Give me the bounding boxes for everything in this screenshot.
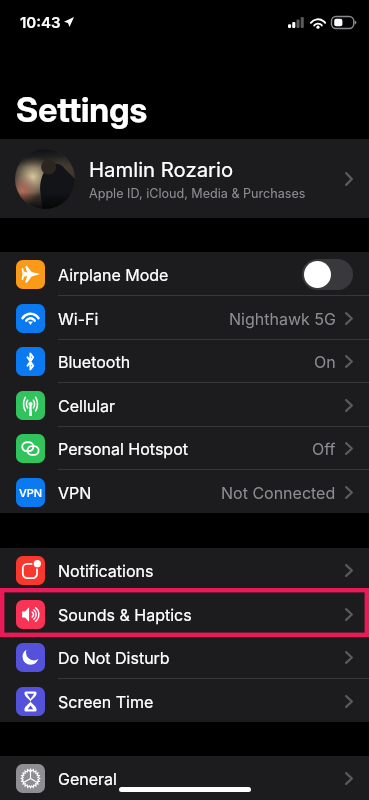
staticText: Not Connected: [221, 483, 336, 502]
staticText: General: [58, 769, 117, 788]
button[interactable]: Hamlin Rozario: [0, 139, 369, 218]
button[interactable]: Bluetooth: [0, 339, 369, 383]
staticText: Cellular: [58, 396, 116, 415]
staticText: Nighthawk 5G: [229, 309, 336, 328]
button[interactable]: Airplane Mode toggle, off: [302, 259, 353, 290]
staticText: Do Not Disturb: [58, 648, 170, 667]
button[interactable]: VPN: [0, 470, 369, 514]
button[interactable]: Wi-Fi: [0, 296, 369, 340]
staticText: Screen Time: [58, 692, 154, 711]
staticText: Settings: [16, 89, 148, 130]
button[interactable]: Cellular: [0, 383, 369, 427]
staticText: On: [314, 352, 336, 371]
staticText: 10:43: [20, 13, 61, 31]
staticText: Apple ID, iCloud, Media & Purchases: [89, 186, 306, 201]
button[interactable]: Notifications: [0, 548, 369, 592]
button[interactable]: General: [0, 756, 369, 800]
staticText: Sounds & Haptics: [58, 605, 192, 624]
staticText: Wi-Fi: [58, 309, 99, 328]
button[interactable]: Screen Time: [0, 679, 369, 723]
staticText: Airplane Mode: [58, 265, 169, 284]
staticText: VPN: [58, 483, 92, 502]
button[interactable]: Personal Hotspot: [0, 426, 369, 470]
staticText: Hamlin Rozario: [89, 157, 234, 182]
staticText: Off: [312, 439, 336, 458]
staticText: Notifications: [58, 561, 154, 580]
staticText: VPN: [19, 486, 43, 499]
button[interactable]: Do Not Disturb: [0, 635, 369, 679]
staticText: Personal Hotspot: [58, 439, 188, 458]
staticText: Bluetooth: [58, 352, 131, 371]
button[interactable]: Airplane Mode: [0, 252, 369, 296]
button[interactable]: Sounds & Haptics: [0, 592, 369, 636]
